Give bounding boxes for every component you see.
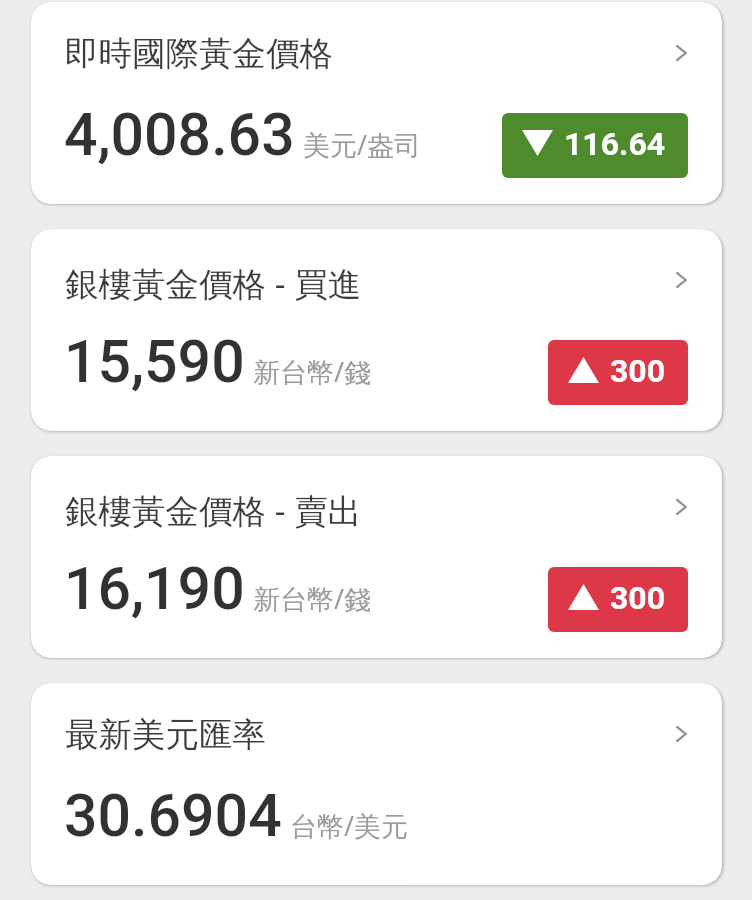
staticText: 16,190 — [64, 554, 245, 623]
button[interactable]: 銀樓黃金價格 - 買進 — [31, 229, 722, 431]
staticText: 30.6904 — [64, 781, 282, 850]
staticText: 美元/盎司 — [303, 126, 422, 163]
staticText: 銀樓黃金價格 - 買進 — [65, 260, 362, 306]
other: Price down — [522, 130, 553, 156]
button[interactable]: Open details — [659, 31, 703, 75]
button[interactable]: 最新美元匯率 — [31, 683, 722, 885]
other: Price up — [568, 584, 599, 610]
staticText: 台幣/美元 — [290, 807, 409, 844]
staticText: 15,590 — [64, 327, 245, 396]
staticText: 300 — [610, 352, 666, 390]
staticText: 300 — [610, 579, 666, 617]
staticText: 4,008.63 — [64, 100, 295, 169]
other: Price up — [568, 357, 599, 383]
button[interactable]: Open details — [659, 712, 703, 756]
button[interactable]: Open details — [659, 258, 703, 302]
staticText: 即時國際黃金價格 — [65, 33, 333, 75]
button[interactable]: Open details — [659, 485, 703, 529]
button[interactable]: Price up — [548, 340, 688, 405]
staticText: 新台幣/錢 — [253, 580, 372, 617]
button[interactable]: 銀樓黃金價格 - 賣出 — [31, 456, 722, 658]
button[interactable]: Price up — [548, 567, 688, 632]
button[interactable]: 即時國際黃金價格 — [31, 2, 722, 204]
staticText: 最新美元匯率 — [65, 714, 266, 756]
button[interactable]: Price down — [502, 113, 688, 178]
staticText: 銀樓黃金價格 - 賣出 — [65, 487, 362, 533]
staticText: 新台幣/錢 — [253, 353, 372, 390]
staticText: 116.64 — [564, 125, 666, 163]
